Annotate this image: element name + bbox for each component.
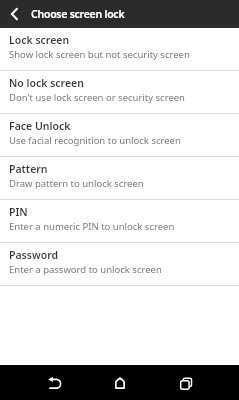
- staticText: Enter a numeric PIN to unlock screen: [9, 220, 175, 233]
- staticText: No lock screen: [9, 76, 84, 90]
- button[interactable]: Lock screen: [0, 28, 239, 70]
- button[interactable]: No lock screen: [0, 71, 239, 113]
- staticText: Lock screen: [9, 33, 70, 47]
- staticText: PIN: [9, 205, 28, 219]
- staticText: Don't use lock screen or security screen: [9, 91, 185, 104]
- staticText: Show lock screen but not security screen: [9, 48, 190, 61]
- staticText: Pattern: [9, 162, 48, 176]
- button[interactable]: [0, 0, 29, 28]
- staticText: Use facial recognition to unlock screen: [9, 134, 181, 147]
- button[interactable]: PIN: [0, 200, 239, 242]
- button[interactable]: Password: [0, 243, 239, 285]
- staticText: Face Unlock: [9, 119, 71, 133]
- button[interactable]: Face Unlock: [0, 114, 239, 156]
- button[interactable]: Pattern: [0, 157, 239, 199]
- staticText: Draw pattern to unlock screen: [9, 177, 144, 190]
- staticText: Enter a password to unlock screen: [9, 263, 162, 276]
- button[interactable]: [21, 365, 87, 400]
- staticText: Password: [9, 248, 59, 262]
- button[interactable]: [87, 365, 153, 400]
- staticText: Choose screen lock: [31, 7, 125, 21]
- button[interactable]: [153, 365, 219, 400]
